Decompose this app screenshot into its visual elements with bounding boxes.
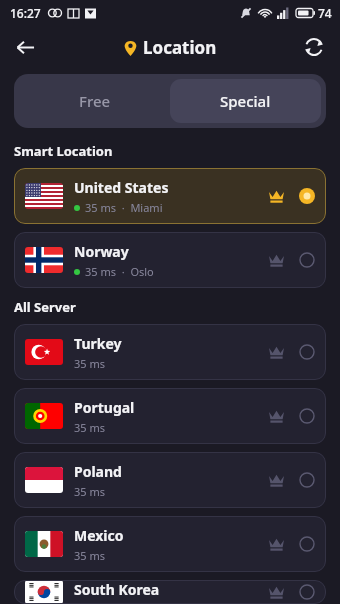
staticText: Free (79, 91, 111, 111)
button[interactable]: Special (170, 79, 321, 123)
staticText: Smart Location (14, 142, 113, 160)
staticText: Poland (74, 462, 122, 481)
staticText: 35 ms (74, 484, 105, 499)
staticText: 74 (318, 5, 332, 21)
staticText: Special (220, 91, 271, 111)
staticText: Portugal (74, 398, 135, 417)
staticText: 35 ms (74, 356, 105, 371)
staticText: South Korea (74, 580, 160, 599)
button[interactable]: Refresh (298, 31, 330, 63)
button[interactable]: Back (8, 30, 42, 64)
button[interactable]: Free (19, 79, 170, 123)
staticText: 35 ms (74, 602, 105, 604)
button[interactable]: South Korea (14, 580, 326, 604)
staticText: Norway (74, 242, 129, 261)
staticText: United States (74, 178, 169, 197)
staticText: 35 ms · Oslo (85, 264, 154, 279)
button[interactable]: United States (14, 168, 326, 224)
button[interactable]: Mexico (14, 516, 326, 572)
staticText: 35 ms (74, 420, 105, 435)
button[interactable]: Norway (14, 232, 326, 288)
staticText: 35 ms · Miami (85, 200, 163, 215)
button[interactable]: Poland (14, 452, 326, 508)
button[interactable]: Portugal (14, 388, 326, 444)
staticText: Location (143, 36, 217, 59)
staticText: All Server (14, 298, 76, 316)
staticText: 16:27 (10, 5, 41, 21)
staticText: Turkey (74, 334, 122, 353)
staticText: Mexico (74, 526, 124, 545)
staticText: 35 ms (74, 548, 105, 563)
button[interactable]: Turkey (14, 324, 326, 380)
